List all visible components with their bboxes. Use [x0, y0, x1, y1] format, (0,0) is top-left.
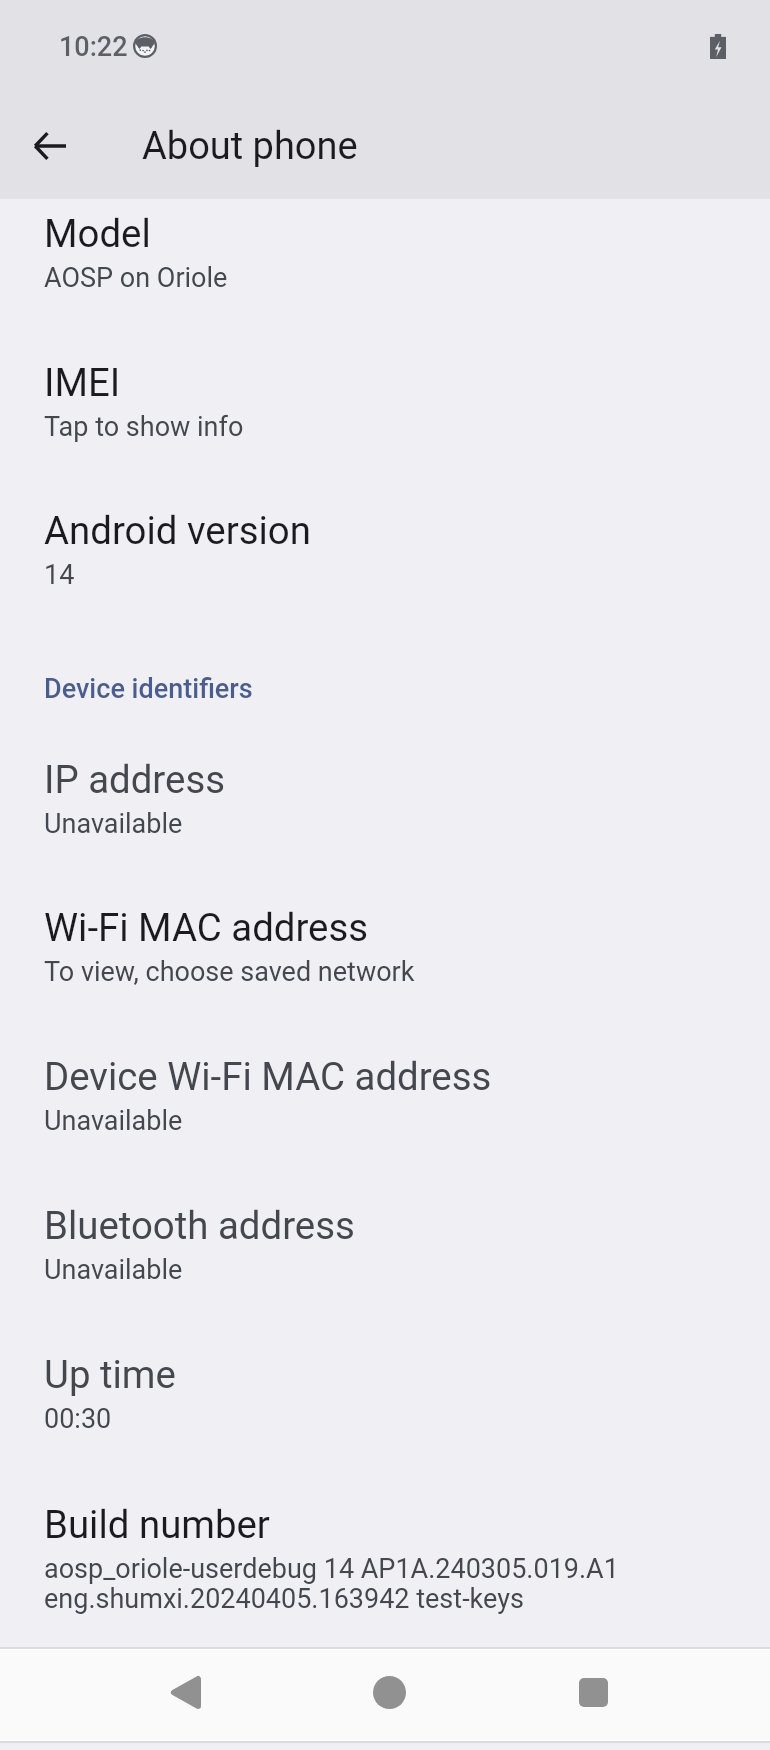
button[interactable]: Navigate up	[21, 117, 79, 175]
staticText: Tap to show info	[44, 408, 244, 443]
staticText: Up time	[44, 1348, 176, 1398]
staticText: Unavailable	[44, 1102, 183, 1137]
staticText: About phone	[142, 120, 358, 169]
staticText: 00:30	[44, 1400, 112, 1435]
staticText: Model	[44, 207, 151, 257]
staticText: Bluetooth address	[44, 1199, 355, 1249]
staticText: Device identifiers	[44, 670, 253, 705]
staticText: Build number	[44, 1498, 270, 1548]
staticText: 14	[44, 556, 75, 591]
button[interactable]: Wi-Fi MAC address	[0, 883, 770, 990]
button[interactable]: Bluetooth address	[0, 1181, 770, 1288]
button[interactable]: Build number	[0, 1480, 770, 1617]
button[interactable]: Recent apps	[555, 1654, 631, 1730]
staticText: To view, choose saved network	[44, 953, 415, 988]
staticText: eng.shumxi.20240405.163942 test-keys	[44, 1580, 524, 1615]
staticText: Device Wi-Fi MAC address	[44, 1050, 492, 1100]
staticText: Wi-Fi MAC address	[44, 901, 369, 951]
staticText: 10:22	[59, 28, 128, 63]
button[interactable]: IP address	[0, 735, 770, 842]
staticText: aosp_oriole-userdebug 14 AP1A.240305.019…	[44, 1550, 619, 1585]
button[interactable]: IMEI	[0, 338, 770, 445]
staticText: Android version	[44, 504, 311, 554]
button[interactable]: Up time	[0, 1330, 770, 1437]
staticText: IMEI	[44, 356, 121, 406]
button[interactable]: Model	[0, 189, 770, 296]
staticText: AOSP on Oriole	[44, 259, 228, 294]
staticText: IP address	[44, 753, 226, 803]
button[interactable]: Back	[147, 1654, 223, 1730]
staticText: Unavailable	[44, 805, 183, 840]
button[interactable]: Android version	[0, 486, 770, 593]
button[interactable]: Device Wi-Fi MAC address	[0, 1032, 770, 1139]
button[interactable]: Home	[351, 1654, 427, 1730]
staticText: Unavailable	[44, 1251, 183, 1286]
